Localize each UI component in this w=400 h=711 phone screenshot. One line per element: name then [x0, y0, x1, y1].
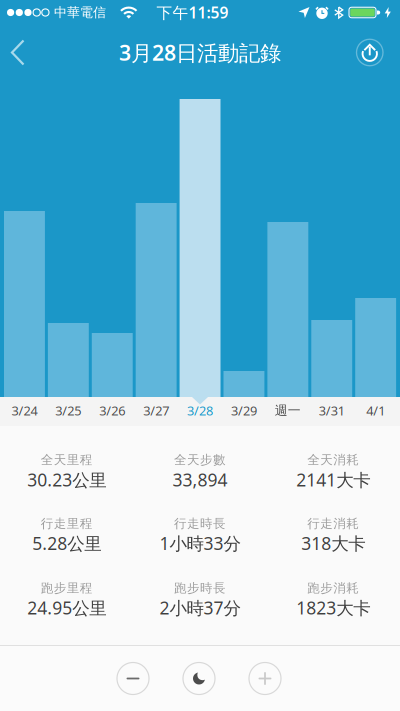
staticText: 33,894 — [172, 468, 227, 492]
button[interactable]: 3/29 — [223, 397, 264, 426]
staticText: 跑步消耗 — [307, 580, 359, 596]
button[interactable]: 3/27 — [136, 397, 177, 426]
staticText: 行走消耗 — [307, 516, 359, 531]
button[interactable]: 4/1 — [355, 397, 396, 426]
staticText: 3/29 — [231, 402, 257, 419]
staticText: 中華電信 — [54, 4, 106, 21]
staticText: 行走時長 — [174, 516, 226, 531]
staticText: 3/27 — [143, 402, 169, 419]
staticText: 週一 — [275, 402, 301, 418]
button[interactable]: 3/31 — [311, 397, 352, 426]
staticText: 全天消耗 — [307, 452, 359, 468]
staticText: 30.23公里 — [27, 468, 106, 492]
staticText: 跑步里程 — [41, 580, 93, 596]
button[interactable]: 3/26 — [92, 397, 133, 426]
button[interactable] — [0, 25, 25, 79]
button[interactable] — [249, 662, 281, 694]
staticText: 全天步數 — [174, 452, 226, 468]
staticText: 2小時37分 — [159, 596, 240, 620]
staticText: 4/1 — [366, 402, 385, 419]
staticText: 1823大卡 — [296, 596, 370, 620]
staticText: 3/24 — [11, 402, 37, 419]
staticText: 318大卡 — [301, 531, 365, 555]
staticText: 1小時33分 — [159, 531, 240, 555]
button[interactable]: 週一 — [267, 397, 308, 426]
staticText: 3月28日活動記錄 — [119, 38, 281, 67]
button[interactable]: 3/28 — [180, 397, 220, 426]
staticText: 3/26 — [99, 402, 125, 419]
button[interactable] — [117, 662, 149, 694]
button[interactable]: 3/24 — [4, 397, 45, 426]
button[interactable] — [183, 662, 215, 694]
staticText: 2141大卡 — [296, 468, 370, 492]
staticText: 24.95公里 — [27, 596, 106, 620]
staticText: 5.28公里 — [32, 531, 101, 555]
staticText: 行走里程 — [41, 516, 93, 531]
staticText: 3/25 — [55, 402, 81, 419]
button[interactable] — [356, 24, 400, 81]
staticText: 跑步時長 — [174, 580, 226, 596]
button[interactable]: 3/25 — [48, 397, 89, 426]
staticText: 3/28 — [187, 402, 213, 419]
staticText: 全天里程 — [41, 452, 93, 468]
staticText: 3/31 — [319, 402, 345, 419]
staticText: 下午11:59 — [156, 2, 228, 23]
